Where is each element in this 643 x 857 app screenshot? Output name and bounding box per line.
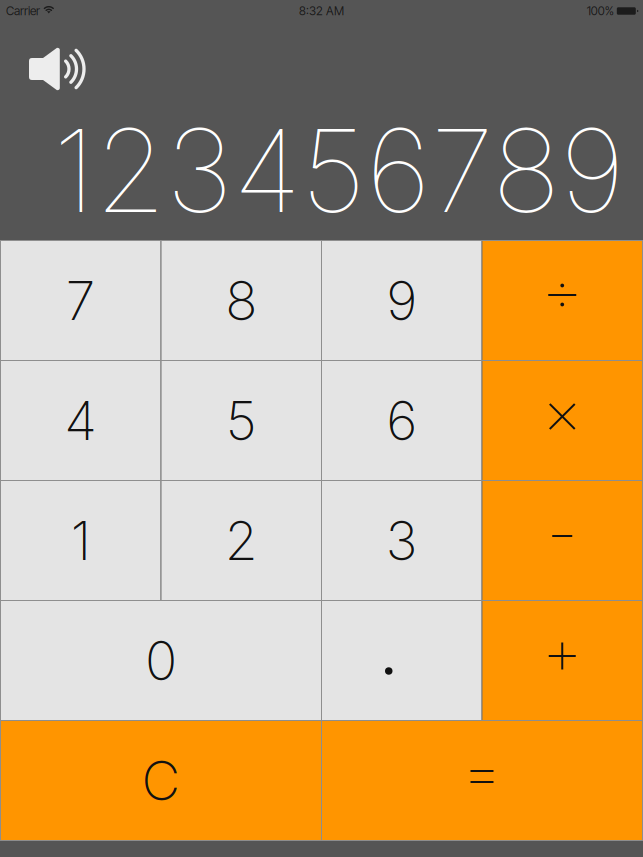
button[interactable]: Mute xyxy=(29,47,85,91)
staticText: 100% xyxy=(587,4,614,18)
staticText: 0 xyxy=(145,628,177,693)
staticText: Carrier xyxy=(6,4,40,18)
button[interactable]: Add xyxy=(482,601,642,720)
button[interactable] xyxy=(1,361,160,480)
staticText: C xyxy=(141,748,180,813)
button[interactable] xyxy=(322,481,481,600)
staticText: 7 xyxy=(66,268,96,333)
staticText: 3 xyxy=(386,508,418,573)
button[interactable] xyxy=(322,361,481,480)
button[interactable] xyxy=(161,361,321,480)
staticText: 1 xyxy=(71,508,91,573)
button[interactable] xyxy=(161,481,321,600)
staticText: 4 xyxy=(64,388,97,453)
button[interactable]: Equals xyxy=(322,721,642,840)
staticText: 8 xyxy=(225,268,257,333)
staticText: 6 xyxy=(386,388,417,453)
button[interactable]: Subtract xyxy=(482,481,642,600)
staticText: 9 xyxy=(386,268,417,333)
staticText: 8:32 AM xyxy=(299,4,344,18)
button[interactable]: Divide xyxy=(482,241,642,360)
button[interactable]: Multiply xyxy=(482,361,642,480)
button[interactable] xyxy=(1,721,321,840)
staticText: 2 xyxy=(225,508,258,573)
staticText: 123456789 xyxy=(53,101,625,240)
button[interactable] xyxy=(1,481,160,600)
button[interactable]: Decimal point xyxy=(322,601,481,720)
button[interactable] xyxy=(1,601,321,720)
staticText: 5 xyxy=(226,388,257,453)
button[interactable] xyxy=(322,241,481,360)
button[interactable] xyxy=(1,241,160,360)
button[interactable] xyxy=(161,241,321,360)
